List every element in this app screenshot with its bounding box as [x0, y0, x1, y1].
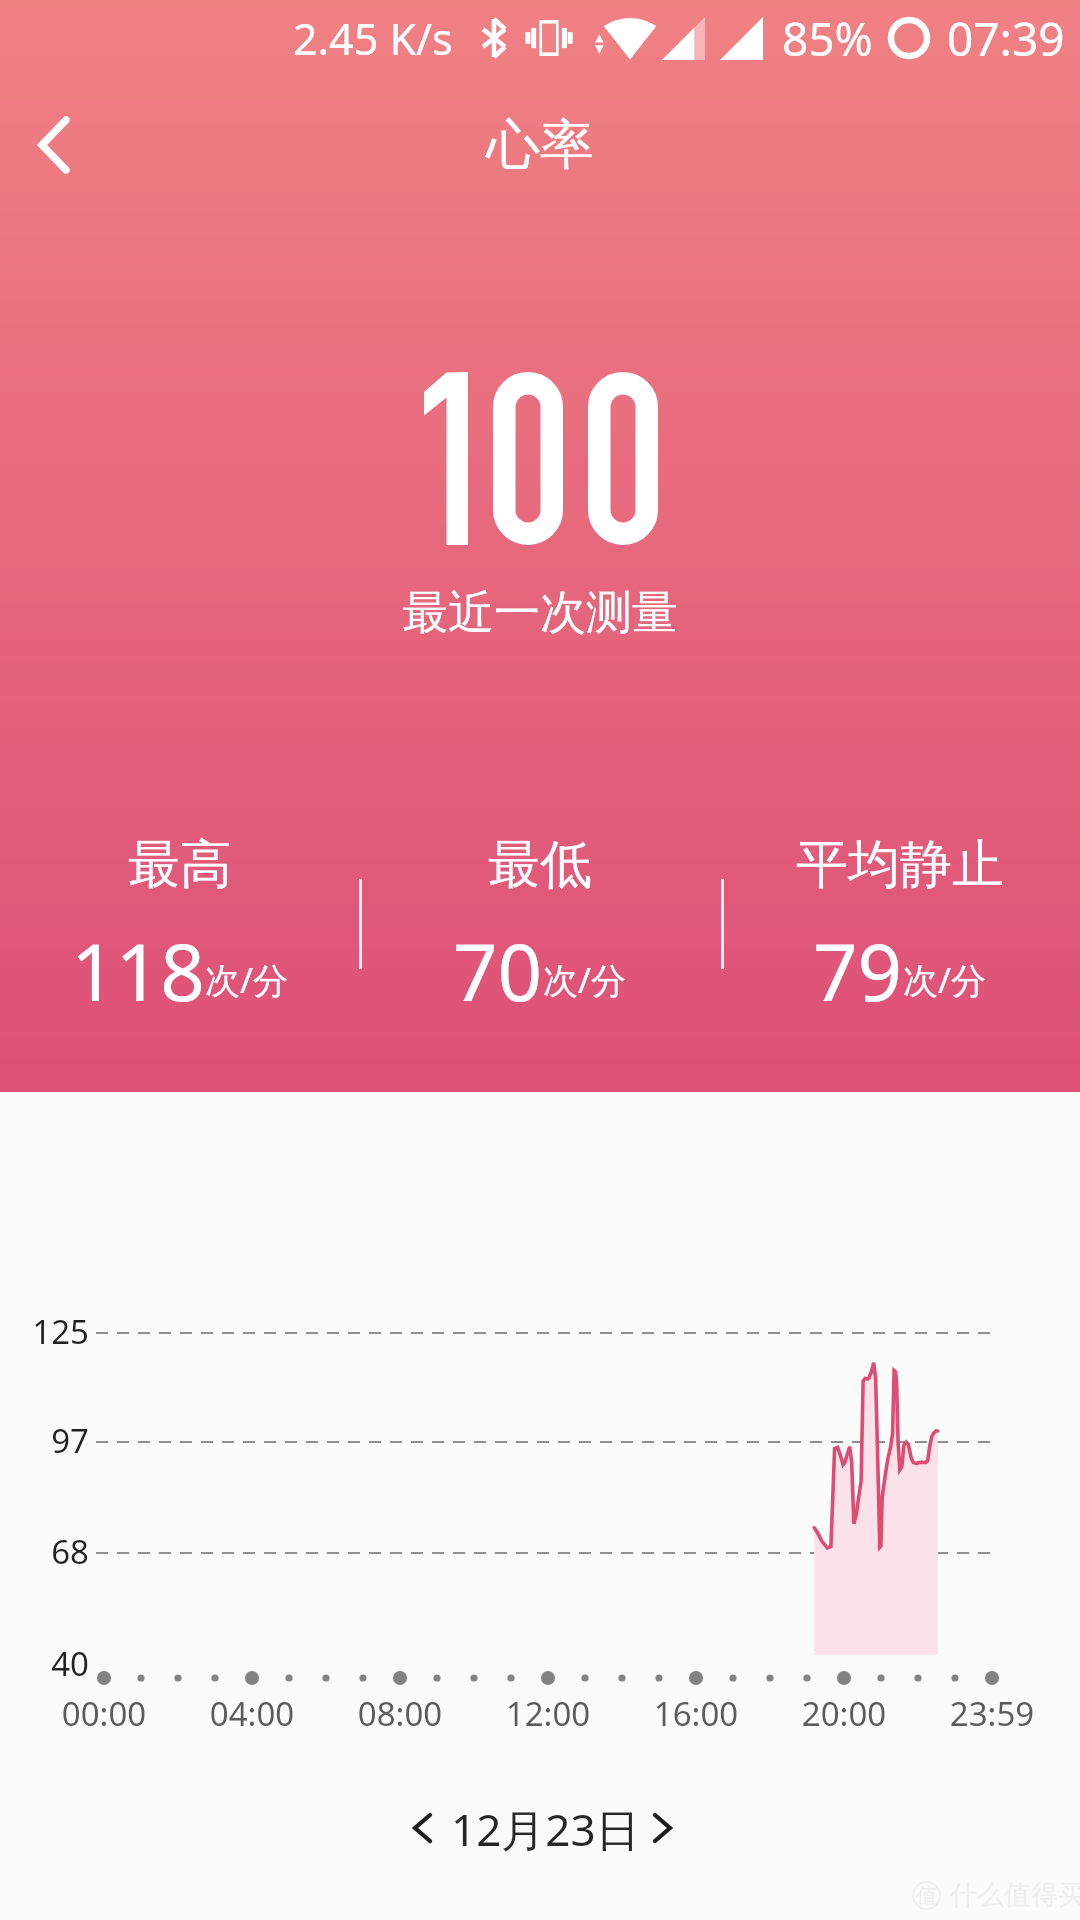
- staticText: 12月23日: [451, 1799, 635, 1859]
- button[interactable]: Next day: [633, 1793, 691, 1863]
- staticText: 最低: [488, 832, 592, 898]
- staticText: 79: [813, 918, 903, 1012]
- staticText: 04:00: [172, 1691, 332, 1736]
- staticText: 118: [71, 918, 205, 1012]
- button[interactable]: 12月23日: [451, 1794, 635, 1864]
- staticText: 12:00: [468, 1691, 628, 1736]
- staticText: 次/分: [903, 956, 987, 1004]
- staticText: 23:59: [912, 1691, 1072, 1736]
- staticText: 16:00: [616, 1691, 776, 1736]
- button[interactable]: Previous day: [393, 1793, 451, 1863]
- staticText: 70: [453, 918, 543, 1012]
- staticText: 125: [2, 1309, 89, 1354]
- staticText: 07:39: [947, 7, 1065, 70]
- staticText: 68: [2, 1529, 89, 1574]
- staticText: 心率: [486, 111, 594, 179]
- button[interactable]: 平均静止: [720, 832, 1080, 1012]
- staticText: 值: [916, 1883, 937, 1909]
- staticText: 最高: [128, 832, 232, 898]
- staticText: 最近一次测量: [0, 584, 1080, 642]
- staticText: 次/分: [543, 956, 627, 1004]
- button[interactable]: 最高: [0, 832, 360, 1012]
- staticText: 次/分: [205, 956, 289, 1004]
- staticText: 85%: [782, 7, 873, 70]
- button[interactable]: Back: [11, 102, 97, 188]
- staticText: 40: [2, 1641, 89, 1686]
- staticText: 什么值得买: [950, 1878, 1080, 1912]
- staticText: 20:00: [764, 1691, 924, 1736]
- staticText: 2.45 K/s: [293, 9, 453, 68]
- staticText: 00:00: [24, 1691, 184, 1736]
- staticText: 97: [2, 1418, 89, 1463]
- button[interactable]: 最低: [360, 832, 720, 1012]
- staticText: 平均静止: [796, 832, 1004, 898]
- staticText: 08:00: [320, 1691, 480, 1736]
